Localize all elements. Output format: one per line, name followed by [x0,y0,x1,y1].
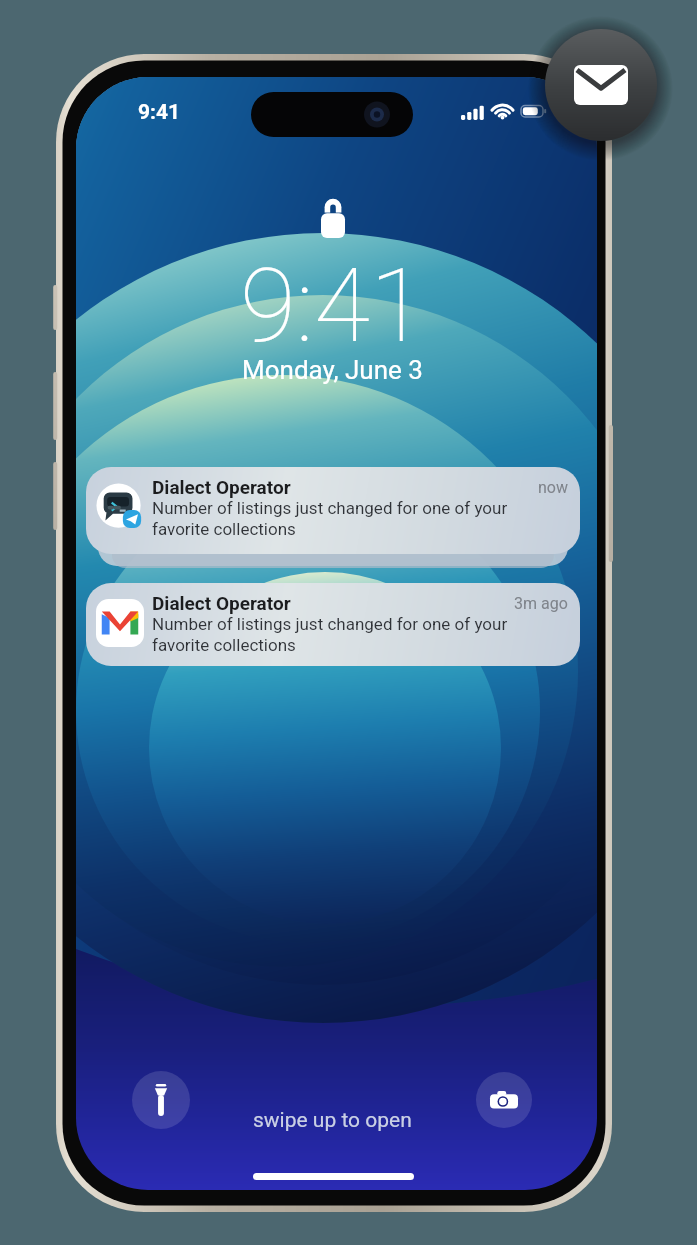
button[interactable]: Flashlight [132,1071,190,1129]
button[interactable]: Camera [476,1072,532,1128]
button[interactable]: Dialect Operator [86,467,580,554]
staticText: Monday, June 3 [242,355,423,385]
staticText: 3m ago [514,594,568,613]
staticText: Number of listings just changed for one … [152,498,568,539]
staticText: swipe up to open [253,1108,412,1133]
staticText: 9:41 [138,100,181,125]
staticText: Dialect Operator [152,476,538,498]
staticText: Number of listings just changed for one … [152,614,568,655]
button[interactable]: Dialect Operator [86,583,580,666]
staticText: now [538,478,568,497]
button[interactable]: Mail [545,29,657,141]
staticText: 9:41 [240,246,426,366]
staticText: Dialect Operator [152,592,514,614]
